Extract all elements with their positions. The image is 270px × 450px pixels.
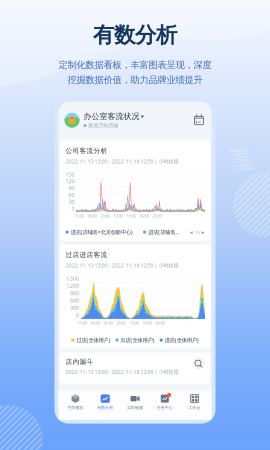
staticText: 办公室客流状况: [83, 111, 139, 121]
staticText: 150: [65, 171, 74, 178]
staticText: 空间概览: [67, 405, 83, 410]
staticText: ▾: [141, 113, 144, 119]
staticText: 有数分析: [93, 22, 177, 48]
staticText: 进店(店铺名…: [148, 228, 179, 236]
staticText: 30: [68, 198, 74, 205]
button[interactable]: 任务中心: [150, 391, 180, 413]
button[interactable]: Calendar: [192, 114, 205, 127]
staticText: 300: [70, 304, 79, 311]
staticText: 1,500: [66, 275, 79, 282]
staticText: 进店(全体用户): [165, 336, 199, 344]
staticText: 11:00 06:00 01:00 20:00 15:00 10:00 05:0…: [77, 320, 164, 326]
staticText: 2022-11-13 13:00 - 2022-11-18 12:59 | 小时…: [65, 368, 178, 375]
staticText: 1,200: [66, 282, 79, 289]
staticText: 2022-11-13 13:00 - 2022-11-18 12:59 | 小时…: [65, 262, 178, 269]
staticText: 实时视频: [127, 405, 143, 410]
staticText: 定制化数据看板，丰富图表呈现，深度: [58, 59, 211, 71]
staticText: ◀ 1/5 ▶: [189, 229, 204, 235]
staticText: 过店(全体用户): [76, 336, 110, 344]
staticText: 11:00 05:00 23:00 17:00 11:00 05:00 23:0…: [74, 213, 161, 219]
staticText: 60: [68, 191, 74, 198]
staticText: 0: [76, 312, 79, 319]
staticText: 有数分析: [97, 405, 113, 410]
staticText: 进店(店铺名=北京创新中心): [71, 228, 133, 236]
staticText: 过店进店客流: [65, 251, 107, 259]
staticText: 120: [65, 178, 74, 184]
button[interactable]: 空间概览: [60, 391, 90, 413]
staticText: 900: [70, 290, 79, 297]
button[interactable]: 实时视频: [120, 391, 150, 413]
staticText: 90: [68, 185, 74, 191]
button[interactable]: 工作台: [180, 391, 209, 413]
staticText: 黄龙万科店铺: [88, 122, 118, 129]
staticText: 出店(全体用户): [121, 336, 155, 344]
staticText: 公司客流分析: [65, 147, 107, 155]
staticText: 挖掘数据价值，助力品牌业绩提升: [67, 74, 202, 86]
staticText: 工作台: [189, 405, 201, 410]
staticText: 任务中心: [157, 405, 173, 410]
button[interactable]: 办公室客流状况: [83, 111, 144, 129]
staticText: 店内漏斗: [65, 358, 93, 366]
staticText: 2022-11-13 13:00 - 2022-11-18 12:59 | 小时…: [65, 158, 178, 165]
button[interactable]: 有数分析: [90, 391, 120, 413]
staticText: 0: [71, 205, 74, 212]
button[interactable]: Search: [192, 358, 204, 370]
staticText: 600: [70, 297, 79, 304]
